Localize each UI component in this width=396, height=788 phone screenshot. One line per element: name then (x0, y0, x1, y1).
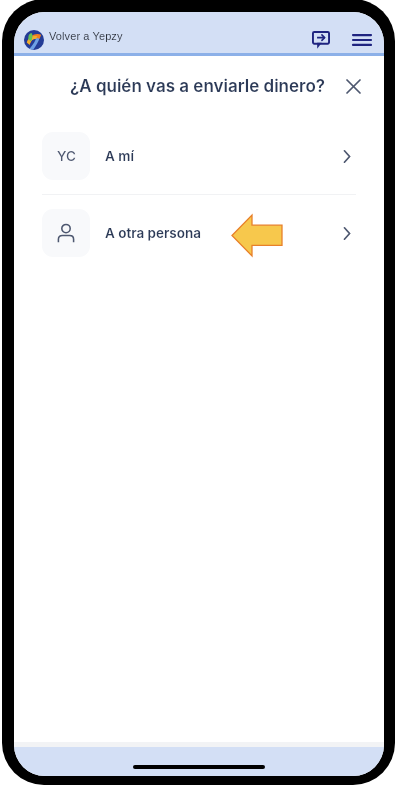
button[interactable]: Messages (302, 22, 339, 58)
staticText: A mí (105, 148, 134, 164)
staticText: YC (57, 148, 76, 164)
other: Open (336, 222, 358, 244)
staticText: Volver a Yepzy (49, 30, 123, 42)
other: Open (336, 145, 358, 167)
staticText: A otra persona (105, 225, 202, 241)
button[interactable]: Volver a Yepzy (24, 30, 123, 50)
button[interactable]: YC (14, 118, 384, 194)
button[interactable]: Close (340, 73, 366, 99)
button[interactable]: A otra persona (14, 195, 384, 271)
button[interactable]: Menu (344, 25, 380, 55)
staticText: ¿A quién vas a enviarle dinero? (70, 76, 325, 97)
